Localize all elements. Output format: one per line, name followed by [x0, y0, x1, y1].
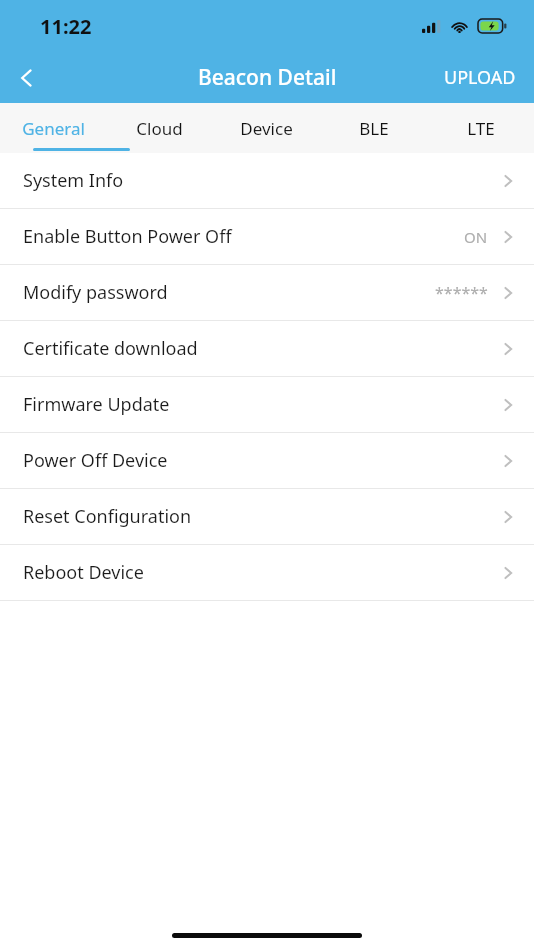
- staticText: Modify password: [23, 280, 168, 305]
- button[interactable]: Certificate download: [0, 321, 534, 376]
- staticText: Beacon Detail: [198, 63, 337, 92]
- button[interactable]: UPLOAD: [432, 57, 528, 98]
- button[interactable]: Firmware Update: [0, 377, 534, 432]
- button[interactable]: Reboot Device: [0, 545, 534, 600]
- button[interactable]: Cloud: [106, 103, 213, 153]
- staticText: Reset Configuration: [23, 504, 192, 529]
- button[interactable]: Modify password: [0, 265, 534, 320]
- staticText: Cloud: [136, 117, 183, 140]
- staticText: ON: [464, 227, 488, 247]
- staticText: Firmware Update: [23, 392, 170, 417]
- staticText: System Info: [23, 168, 124, 193]
- staticText: Reboot Device: [23, 560, 144, 585]
- button[interactable]: Reset Configuration: [0, 489, 534, 544]
- button[interactable]: General: [0, 103, 106, 153]
- button[interactable]: BLE: [320, 103, 427, 153]
- button[interactable]: Enable Button Power Off: [0, 209, 534, 264]
- staticText: UPLOAD: [444, 65, 516, 90]
- button[interactable]: Device: [213, 103, 320, 153]
- button[interactable]: System Info: [0, 153, 534, 208]
- button[interactable]: LTE: [427, 103, 534, 153]
- button[interactable]: Power Off Device: [0, 433, 534, 488]
- staticText: LTE: [467, 117, 495, 140]
- button[interactable]: Back: [0, 52, 54, 103]
- staticText: Power Off Device: [23, 448, 168, 473]
- staticText: General: [22, 117, 85, 140]
- staticText: ******: [435, 282, 488, 304]
- staticText: 11:22: [40, 13, 92, 40]
- staticText: Enable Button Power Off: [23, 224, 232, 249]
- staticText: Certificate download: [23, 336, 198, 361]
- staticText: Device: [240, 117, 293, 140]
- staticText: BLE: [359, 117, 389, 140]
